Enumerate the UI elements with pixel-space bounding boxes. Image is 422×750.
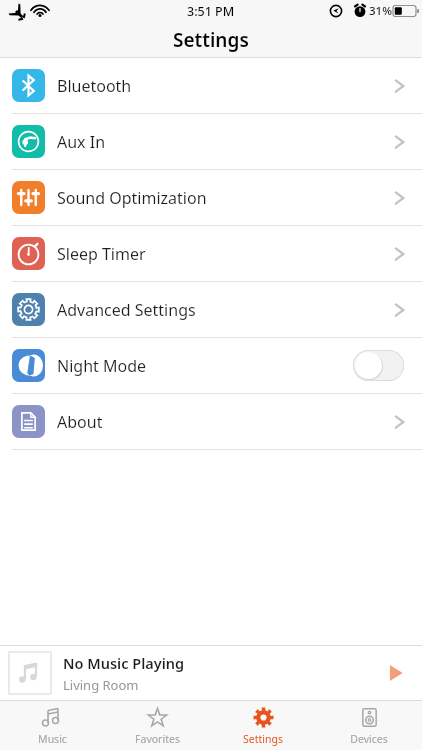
staticText: Living Room [63,676,139,694]
staticText: Favorites [135,732,180,746]
button[interactable]: Sound Optimization [0,170,422,225]
staticText: Music [38,732,67,746]
staticText: Advanced Settings [57,299,196,321]
button[interactable]: Settings [210,701,316,750]
button[interactable]: Devices [316,701,422,750]
staticText: Bluetooth [57,75,132,97]
button[interactable]: About [0,394,422,449]
button[interactable]: Aux In [0,114,422,169]
staticText: 31% [369,3,392,19]
button[interactable]: Night Mode toggle [353,350,404,381]
staticText: 3:51 PM [187,3,235,20]
staticText: Devices [350,732,388,746]
staticText: Settings [243,732,283,746]
button[interactable]: Bluetooth [0,58,422,113]
button[interactable]: Music [0,701,105,750]
button[interactable]: Night Mode [0,338,422,393]
staticText: About [57,411,103,433]
staticText: Sleep Timer [57,243,146,265]
button[interactable]: Sleep Timer [0,226,422,281]
staticText: Sound Optimization [57,187,207,209]
button[interactable]: Play [378,655,414,691]
staticText: No Music Playing [63,653,185,673]
button[interactable]: Favorites [105,701,210,750]
staticText: Settings [173,27,249,53]
button[interactable]: Advanced Settings [0,282,422,337]
staticText: Night Mode [57,355,147,377]
button[interactable]: No Music Playing [0,646,422,700]
staticText: Aux In [57,131,106,153]
